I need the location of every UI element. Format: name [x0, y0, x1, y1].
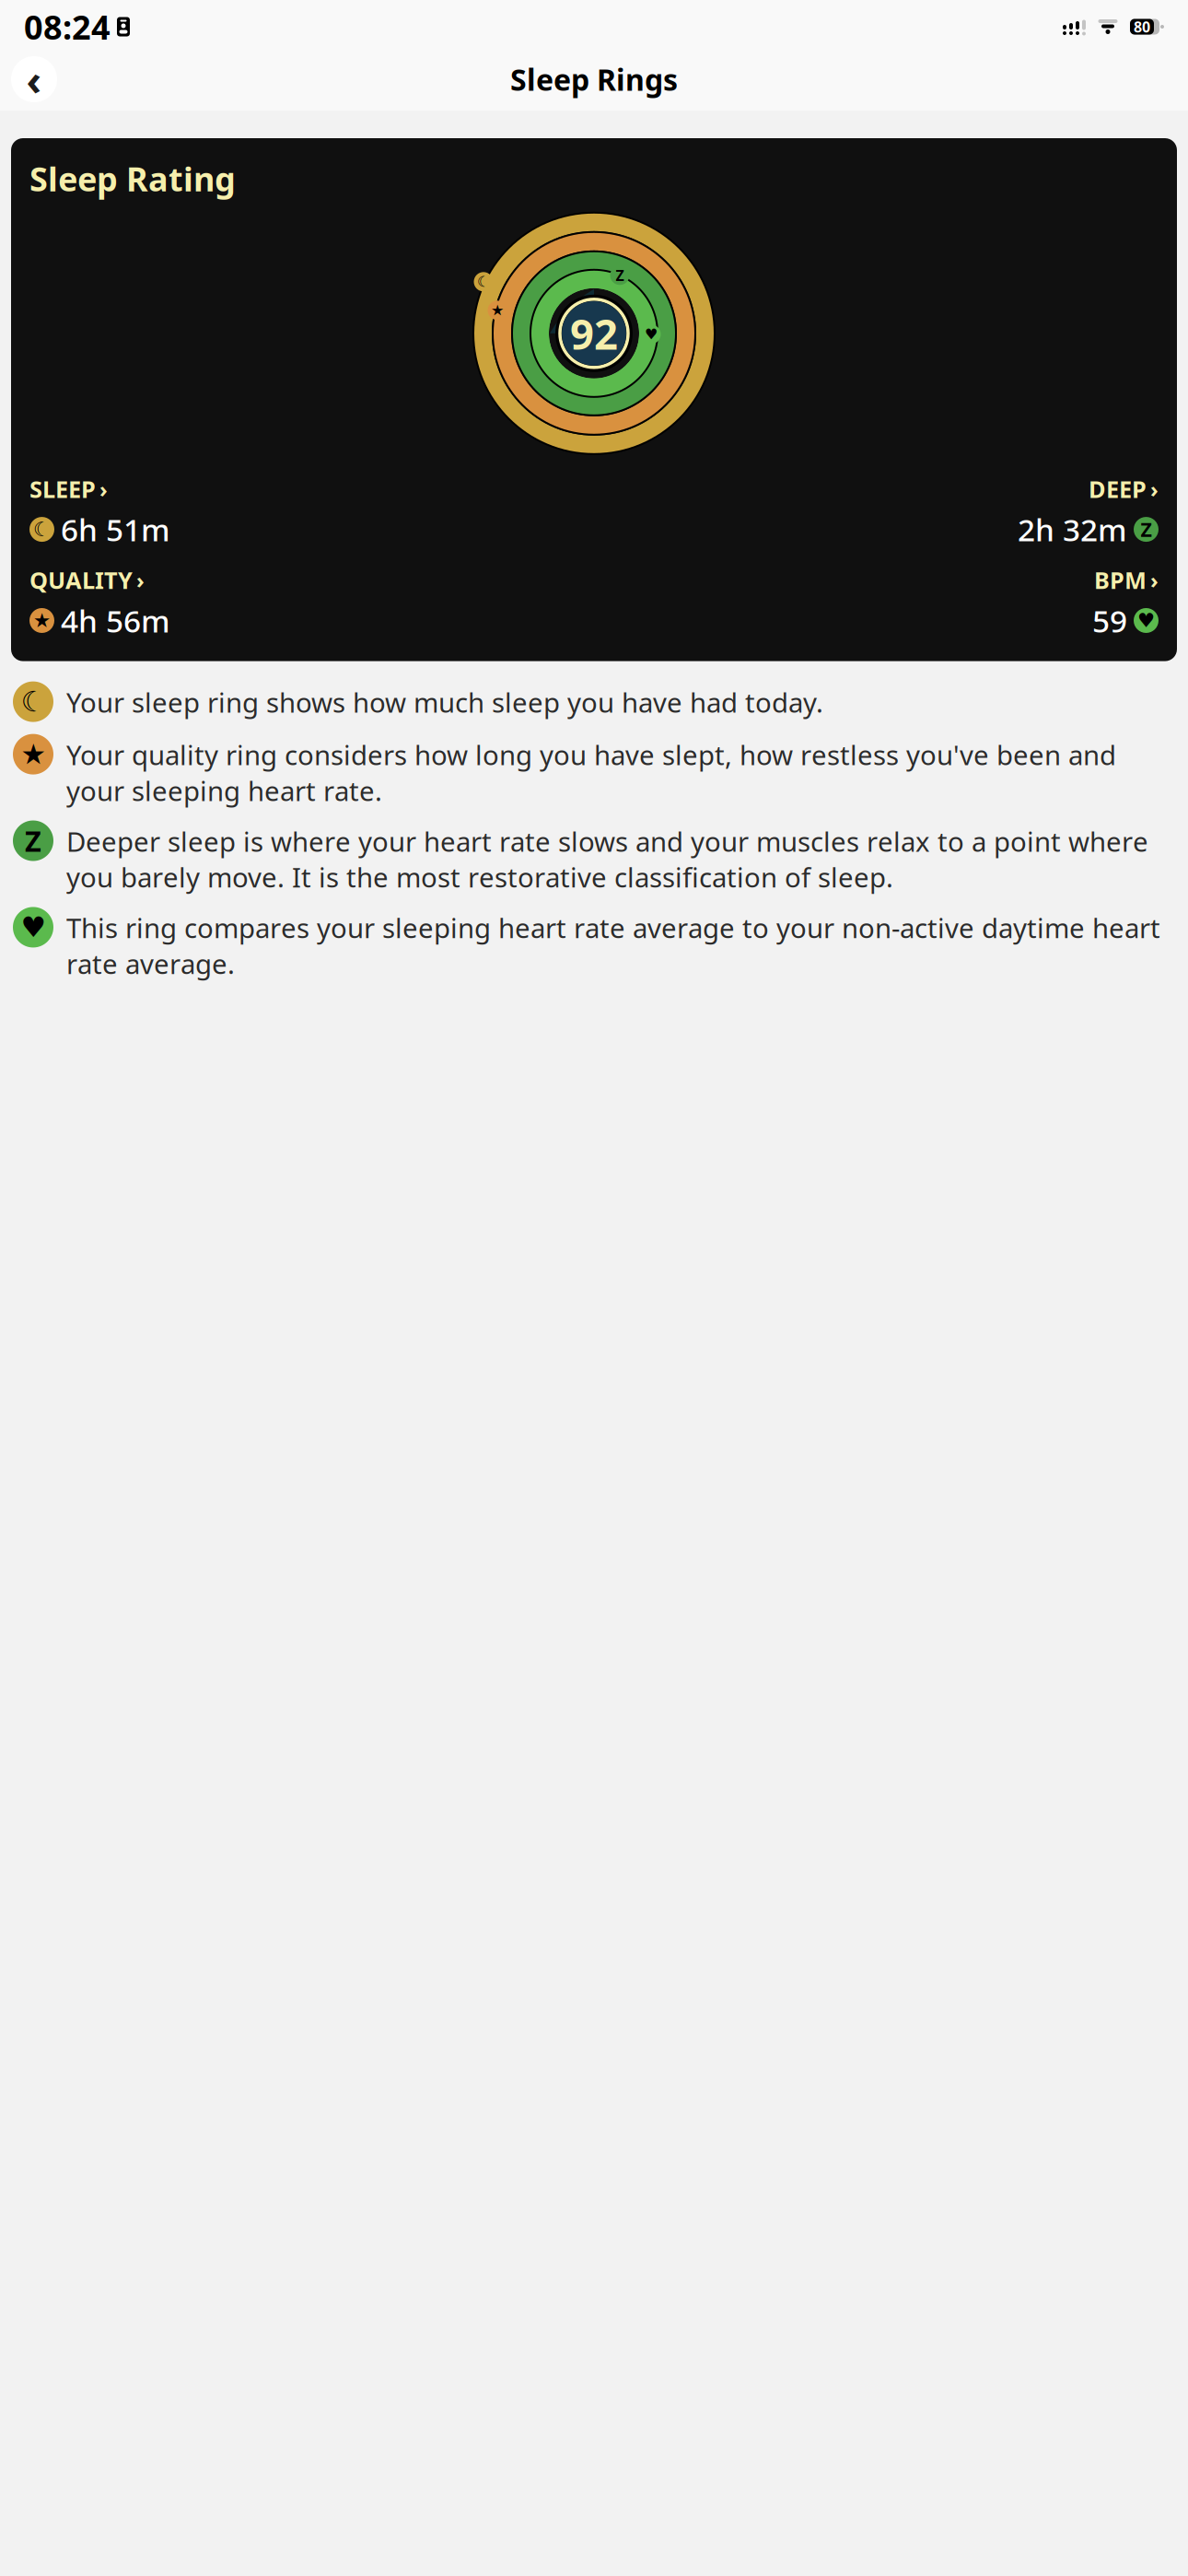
staticText: Z [1141, 516, 1152, 542]
staticText: ★ [33, 609, 51, 632]
button[interactable]: SLEEP [29, 473, 170, 550]
staticText: Z [616, 266, 624, 285]
staticText: ☾ [477, 273, 490, 290]
button[interactable]: Back [11, 56, 57, 102]
staticText: ☾ [33, 518, 51, 541]
staticText: This ring compares your sleeping heart r… [66, 910, 1160, 981]
staticText: 80 [1134, 17, 1150, 36]
staticText: BPM [1094, 564, 1147, 595]
staticText: Deeper sleep is where your heart rate sl… [66, 823, 1148, 895]
staticText: Your quality ring considers how long you… [66, 737, 1116, 808]
staticText: SLEEP [29, 473, 96, 504]
staticText: ★ [491, 302, 504, 319]
staticText: 2h 32m [1018, 509, 1127, 550]
staticText: QUALITY [29, 564, 133, 595]
staticText: 6h 51m [61, 509, 170, 550]
staticText: ★ [21, 738, 46, 770]
staticText: ‹ [26, 52, 42, 107]
button[interactable]: BPM [1092, 564, 1159, 641]
staticText: 92 [570, 306, 618, 361]
staticText: Sleep Rings [510, 60, 678, 99]
staticText: › [136, 565, 145, 595]
staticText: Z [25, 822, 41, 859]
button[interactable]: QUALITY [29, 564, 170, 641]
button[interactable]: DEEP [1018, 473, 1159, 550]
staticText: 59 [1092, 600, 1127, 641]
staticText: ♥ [645, 326, 658, 343]
staticText: ♥ [21, 911, 46, 943]
staticText: Sleep Rating [29, 157, 236, 201]
staticText: Your sleep ring shows how much sleep you… [66, 684, 823, 720]
staticText: › [1150, 474, 1159, 504]
staticText: 08:24 [24, 5, 111, 49]
staticText: ♥ [1137, 609, 1155, 632]
staticText: › [1150, 565, 1159, 595]
staticText: › [99, 474, 108, 504]
staticText: DEEP [1089, 473, 1147, 504]
staticText: ☾ [21, 686, 46, 718]
staticText: 4h 56m [61, 600, 170, 641]
